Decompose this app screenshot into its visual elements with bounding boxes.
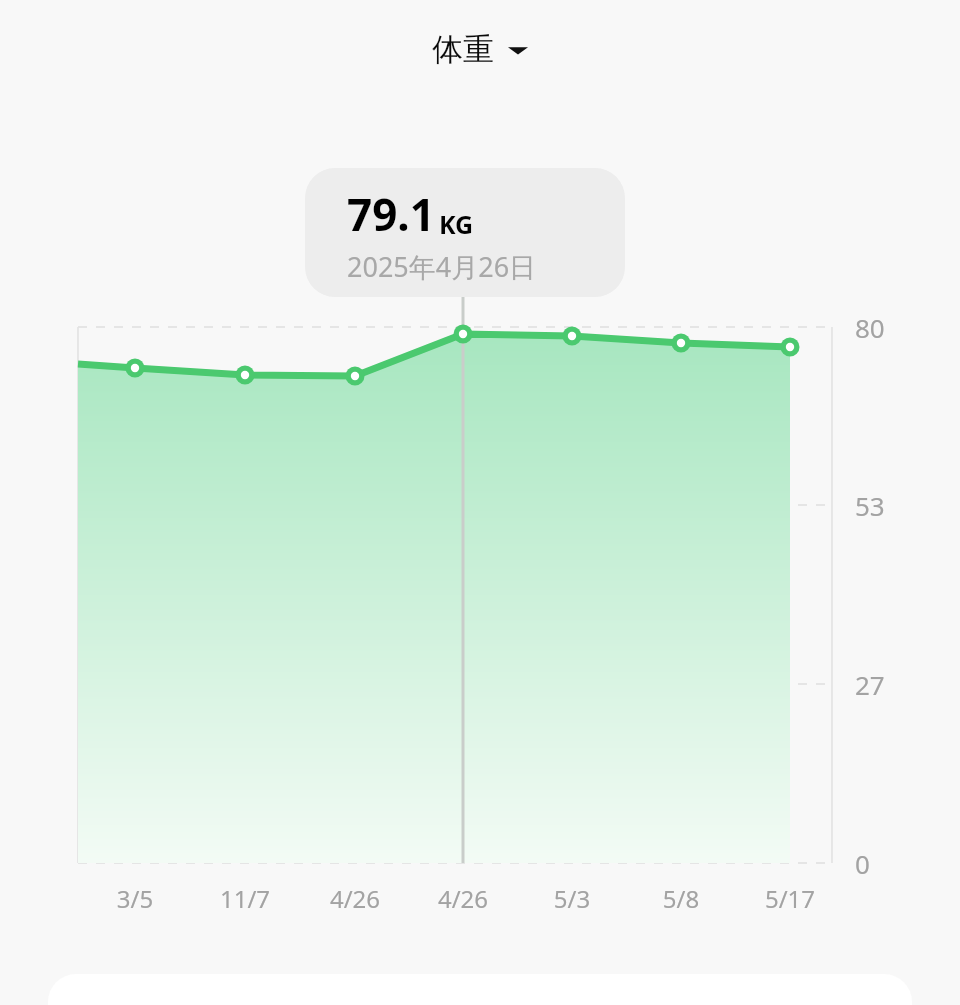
staticText: 11/7 xyxy=(195,882,295,915)
button[interactable]: 79.1 xyxy=(305,168,625,297)
staticText: 4/26 xyxy=(413,882,513,915)
staticText: 3/5 xyxy=(85,882,185,915)
staticText: 4/26 xyxy=(305,882,405,915)
button[interactable]: 体重 xyxy=(424,26,536,73)
staticText: 27 xyxy=(855,667,885,702)
staticText: KG xyxy=(439,207,474,241)
staticText: 53 xyxy=(855,488,885,523)
staticText: 0 xyxy=(855,846,870,881)
staticText: 5/3 xyxy=(522,882,622,915)
staticText: 5/17 xyxy=(740,882,840,915)
staticText: 2025年4月26日 xyxy=(347,248,537,285)
staticText: 体重 xyxy=(432,30,494,69)
staticText: 79.1 xyxy=(347,184,435,244)
staticText: 80 xyxy=(855,310,885,345)
staticText: 5/8 xyxy=(631,882,731,915)
